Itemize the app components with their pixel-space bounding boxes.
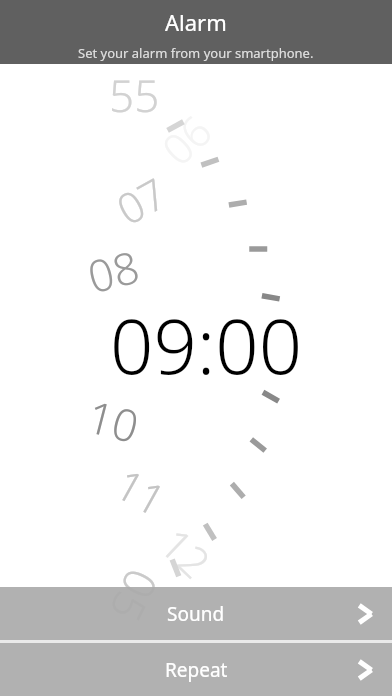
staticText: 08	[81, 236, 146, 306]
staticText: 10	[81, 386, 146, 456]
staticText: 05	[96, 560, 173, 632]
staticText: Alarm	[165, 7, 227, 37]
staticText: Sound	[167, 601, 225, 627]
staticText: 12	[149, 515, 223, 590]
other: Repeat	[356, 658, 374, 682]
button[interactable]: Sound	[0, 587, 392, 640]
staticText: Repeat	[165, 657, 228, 683]
staticText: 11	[106, 455, 176, 528]
staticText: 06	[149, 102, 223, 177]
staticText: 09:00	[110, 293, 303, 397]
button[interactable]: Repeat	[0, 643, 392, 696]
other: Sound	[356, 602, 374, 626]
staticText: 07	[106, 164, 176, 237]
staticText: Set your alarm from your smartphone.	[78, 44, 314, 62]
staticText: 55	[109, 65, 160, 125]
